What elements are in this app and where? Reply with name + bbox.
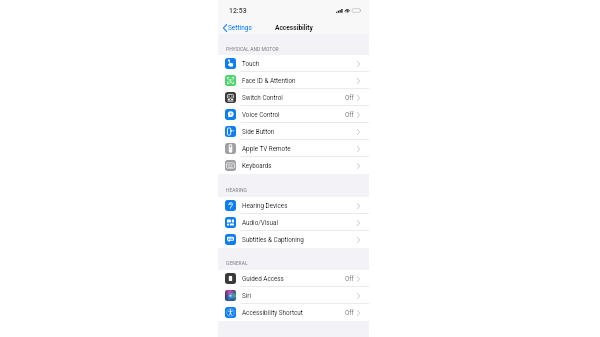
staticText: HEARING [226,187,247,193]
button[interactable]: Audio/Visual [218,214,369,231]
button[interactable]: Settings [218,23,256,33]
staticText: Guided Access [242,275,345,282]
staticText: Settings [228,24,252,32]
staticText: Accessibility [275,24,313,32]
staticText: Siri [242,292,357,299]
button[interactable]: Subtitles & Captioning [218,231,369,248]
button[interactable]: Hearing Devices [218,197,369,214]
staticText: Switch Control [242,94,345,101]
staticText: Off [345,94,354,101]
button[interactable]: Keyboards [218,157,369,174]
button[interactable]: Face ID & Attention [218,72,369,89]
staticText: Accessibility Shortcut [242,309,345,316]
button[interactable]: Touch [218,55,369,72]
button[interactable]: Guided Access [218,270,369,287]
staticText: Off [345,309,354,316]
staticText: Off [345,275,354,282]
button[interactable]: Side Button [218,123,369,140]
button[interactable]: Apple TV Remote [218,140,369,157]
staticText: Voice Control [242,111,345,118]
button[interactable]: Voice Control [218,106,369,123]
staticText: Subtitles & Captioning [242,236,357,243]
staticText: Apple TV Remote [242,145,357,152]
staticText: PHYSICAL AND MOTOR [226,46,279,52]
staticText: Keyboards [242,162,357,169]
staticText: Hearing Devices [242,202,357,209]
staticText: Face ID & Attention [242,77,357,84]
staticText: Audio/Visual [242,219,357,226]
button[interactable]: Switch Control [218,89,369,106]
staticText: Touch [242,60,357,67]
staticText: Off [345,111,354,118]
button[interactable]: Accessibility Shortcut [218,304,369,321]
button[interactable]: Siri [218,287,369,304]
staticText: 12:53 [229,7,247,15]
staticText: GENERAL [226,260,248,266]
staticText: Side Button [242,128,357,135]
